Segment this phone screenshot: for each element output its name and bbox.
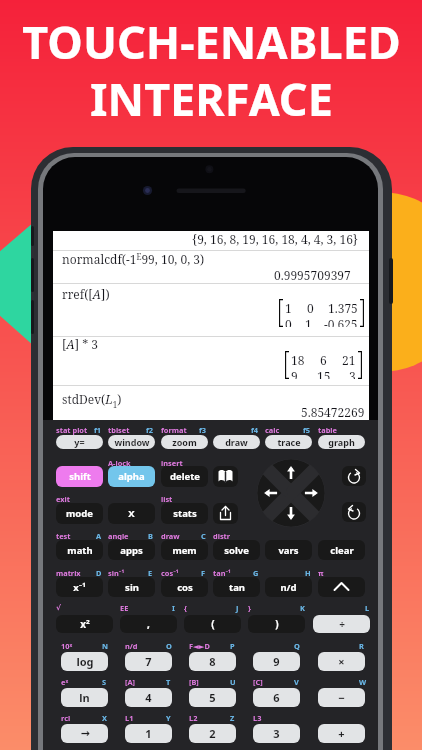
staticText: INTERFACE bbox=[90, 68, 333, 129]
button[interactable]: 6 bbox=[253, 688, 300, 707]
staticText: X bbox=[128, 507, 135, 520]
staticText: L1 bbox=[125, 713, 134, 723]
staticText: 0.9995709397 bbox=[274, 267, 351, 283]
staticText: 1 bbox=[305, 316, 312, 327]
staticText: x² bbox=[80, 617, 90, 631]
button[interactable]: n/d bbox=[265, 577, 312, 597]
staticText: delete bbox=[170, 470, 200, 483]
staticText: x⁻¹ bbox=[73, 581, 86, 594]
staticText: 1 bbox=[285, 300, 292, 316]
staticText: sin bbox=[125, 581, 139, 594]
button[interactable]: ) bbox=[248, 615, 305, 633]
button[interactable]: → bbox=[61, 724, 108, 743]
button[interactable]: ln bbox=[61, 688, 108, 707]
staticText: 7 bbox=[145, 654, 152, 669]
staticText: eˣ bbox=[61, 677, 69, 687]
button[interactable]: 1 bbox=[125, 724, 172, 743]
button[interactable]: Share bbox=[213, 503, 238, 524]
staticText: [B] bbox=[189, 677, 199, 687]
staticText: solve bbox=[224, 544, 249, 557]
button[interactable]: tan bbox=[213, 577, 260, 597]
button[interactable]: window bbox=[108, 435, 155, 449]
staticText: format bbox=[161, 425, 187, 435]
staticText: exit bbox=[56, 494, 70, 504]
button[interactable]: X bbox=[108, 503, 155, 524]
staticText: ln bbox=[79, 690, 90, 705]
button[interactable]: 5 bbox=[189, 688, 236, 707]
button[interactable]: 8 bbox=[189, 652, 236, 671]
staticText: cos bbox=[177, 581, 193, 594]
button[interactable]: zoom bbox=[161, 435, 208, 449]
button[interactable]: clear bbox=[318, 540, 365, 560]
staticText: V bbox=[294, 677, 299, 687]
button[interactable]: mode bbox=[56, 503, 103, 524]
button[interactable]: solve bbox=[213, 540, 260, 560]
button[interactable]: Catalog bbox=[213, 466, 238, 487]
staticText: F◄►D bbox=[189, 641, 210, 651]
button[interactable]: graph bbox=[318, 435, 365, 449]
staticText: ÷ bbox=[339, 617, 345, 631]
button[interactable]: ÷ bbox=[313, 615, 370, 633]
staticText: matrix bbox=[56, 568, 81, 578]
staticText: [C] bbox=[253, 677, 263, 687]
button[interactable]: 4 bbox=[125, 688, 172, 707]
staticText: 8 bbox=[209, 654, 216, 669]
button[interactable]: Directional pad bbox=[257, 459, 325, 527]
staticText: 4 bbox=[145, 690, 152, 705]
button[interactable]: , bbox=[120, 615, 177, 633]
button[interactable]: 2 bbox=[189, 724, 236, 743]
staticText: test bbox=[56, 531, 71, 541]
button[interactable]: vars bbox=[265, 540, 312, 560]
button[interactable]: ( bbox=[184, 615, 241, 633]
button[interactable]: log bbox=[61, 652, 108, 671]
staticText: n/d bbox=[125, 641, 138, 651]
staticText: TOUCH-ENABLED bbox=[22, 11, 401, 72]
staticText: insert bbox=[161, 458, 183, 468]
staticText: Y bbox=[166, 713, 171, 723]
staticText: B bbox=[148, 531, 153, 541]
button[interactable]: draw bbox=[213, 435, 260, 449]
staticText: f4 bbox=[251, 425, 259, 435]
staticText: vars bbox=[278, 544, 299, 557]
staticText: U bbox=[230, 677, 236, 687]
button[interactable]: Undo bbox=[342, 502, 366, 522]
staticText: 0 bbox=[285, 316, 292, 327]
button[interactable]: math bbox=[56, 540, 103, 560]
button[interactable]: y= bbox=[56, 435, 103, 449]
staticText: , bbox=[147, 617, 150, 631]
staticText: ) bbox=[275, 617, 279, 631]
staticText: G bbox=[253, 568, 259, 578]
button[interactable]: x⁻¹ bbox=[56, 577, 103, 597]
button[interactable]: 9 bbox=[253, 652, 300, 671]
button[interactable]: 3 bbox=[253, 724, 300, 743]
button[interactable]: Redo bbox=[342, 466, 366, 486]
staticText: f1 bbox=[94, 425, 102, 435]
button[interactable]: x² bbox=[56, 615, 113, 633]
button[interactable]: Power bbox=[318, 577, 365, 597]
staticText: Z bbox=[230, 713, 235, 723]
button[interactable]: 7 bbox=[125, 652, 172, 671]
button[interactable]: apps bbox=[108, 540, 155, 560]
staticText: n/d bbox=[280, 581, 297, 594]
button[interactable]: stats bbox=[161, 503, 208, 524]
button[interactable]: sin bbox=[108, 577, 155, 597]
staticText: mem bbox=[172, 544, 197, 557]
staticText: stdDev(L1) bbox=[62, 391, 122, 410]
button[interactable]: delete bbox=[161, 466, 208, 487]
button[interactable]: + bbox=[318, 724, 365, 743]
button[interactable]: × bbox=[318, 652, 365, 671]
staticText: D bbox=[96, 568, 102, 578]
button[interactable]: shift bbox=[56, 466, 103, 487]
button[interactable]: cos bbox=[161, 577, 208, 597]
staticText: { bbox=[184, 603, 187, 613]
staticText: normalcdf(-1E99, 10, 0, 3) bbox=[62, 251, 205, 267]
button[interactable]: mem bbox=[161, 540, 208, 560]
staticText: S bbox=[102, 677, 107, 687]
button[interactable]: − bbox=[318, 688, 365, 707]
staticText: 1.375 bbox=[328, 300, 358, 316]
button[interactable]: alpha bbox=[108, 466, 155, 487]
button[interactable]: trace bbox=[265, 435, 312, 449]
staticText: W bbox=[359, 677, 367, 687]
staticText: C bbox=[201, 531, 206, 541]
staticText: zoom bbox=[172, 436, 197, 448]
